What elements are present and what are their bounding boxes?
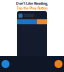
button[interactable]: Play xyxy=(1,60,9,68)
button[interactable]: Download xyxy=(54,60,62,68)
staticText: Tap the Play Button xyxy=(16,6,47,10)
staticText: Don't Like Reading, xyxy=(16,1,48,6)
